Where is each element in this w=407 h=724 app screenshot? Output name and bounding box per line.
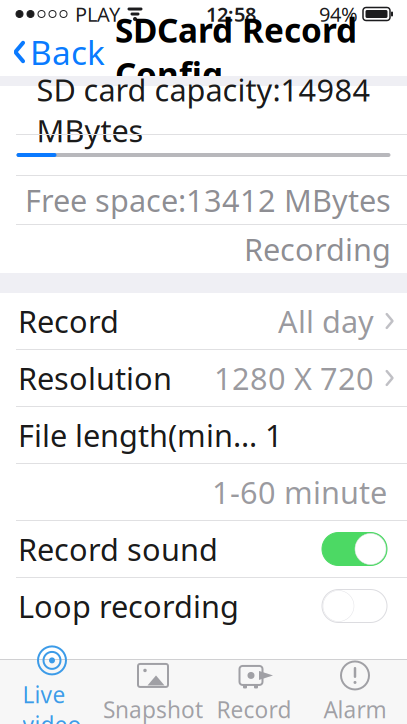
button[interactable]: Alarm — [304, 660, 405, 724]
button[interactable]: Live video — [1, 660, 102, 724]
button[interactable]: Record sound — [322, 532, 387, 565]
staticText: File length(min... 1 — [18, 415, 283, 455]
button[interactable]: Resolution — [0, 350, 407, 406]
staticText: Record sound — [18, 529, 218, 569]
staticText: All day — [278, 301, 374, 341]
staticText: 12:58 — [206, 1, 256, 27]
button[interactable]: Back — [0, 24, 105, 80]
staticText: Recording — [244, 229, 391, 269]
staticText: Alarm — [323, 694, 386, 724]
button[interactable]: Snapshot — [102, 660, 203, 724]
button[interactable]: Loop recording — [322, 589, 387, 622]
staticText: Snapshot — [103, 694, 203, 724]
button[interactable]: Record — [203, 660, 304, 724]
staticText: Loop recording — [18, 586, 239, 626]
staticText: Resolution — [18, 358, 172, 398]
staticText: 1-60 minute — [212, 472, 387, 512]
staticText: 1280 X 720 — [214, 358, 374, 398]
staticText: Free space:13412 MBytes — [25, 180, 391, 220]
staticText: Record — [216, 694, 291, 724]
staticText: 94% — [319, 1, 358, 27]
staticText: SD card capacity:14984 MBytes — [36, 69, 370, 151]
staticText: Back — [30, 30, 105, 74]
staticText: Live video — [22, 679, 81, 724]
staticText: PLAY — [75, 1, 120, 27]
staticText: SDCard Record Config — [115, 8, 357, 96]
button[interactable]: Record — [0, 293, 407, 349]
staticText: Record — [18, 301, 119, 341]
